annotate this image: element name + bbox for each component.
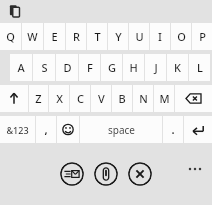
button[interactable]: M	[154, 85, 174, 112]
button[interactable]: X	[49, 85, 69, 112]
button[interactable]: N	[133, 85, 153, 112]
staticText: H	[129, 60, 138, 75]
button[interactable]: More options	[184, 161, 206, 177]
button[interactable]: F	[79, 54, 100, 81]
staticText: Y	[115, 29, 122, 44]
button[interactable]: Y	[108, 23, 128, 50]
staticText: W	[27, 29, 38, 44]
staticText: O	[177, 29, 186, 44]
staticText: P	[199, 29, 206, 44]
button[interactable]: Backspace	[175, 85, 212, 112]
button[interactable]: P	[192, 23, 212, 50]
button[interactable]: Enter	[184, 116, 212, 143]
button[interactable]: H	[123, 54, 144, 81]
button[interactable]: J	[145, 54, 166, 81]
staticText: Q	[6, 29, 15, 44]
staticText: ,	[44, 122, 48, 137]
button[interactable]: B	[112, 85, 132, 112]
button[interactable]: S	[33, 54, 55, 81]
staticText: space	[108, 123, 135, 137]
button[interactable]: space	[80, 116, 162, 143]
button[interactable]: Shift	[0, 85, 28, 112]
staticText: B	[118, 91, 126, 106]
button[interactable]: G	[101, 54, 122, 81]
button[interactable]: C	[70, 85, 90, 112]
button[interactable]: T	[87, 23, 107, 50]
button[interactable]: I	[150, 23, 170, 50]
staticText: I	[158, 29, 162, 44]
staticText: .	[171, 122, 175, 137]
button[interactable]: E	[44, 23, 65, 50]
staticText: V	[98, 91, 105, 106]
staticText: C	[77, 91, 84, 106]
staticText: E	[51, 29, 58, 44]
button[interactable]: Attach	[94, 162, 118, 186]
staticText: &123	[6, 124, 29, 136]
button[interactable]: ,	[36, 116, 56, 143]
button[interactable]: V	[91, 85, 111, 112]
button[interactable]: Close	[128, 162, 152, 186]
staticText: S	[41, 60, 48, 75]
staticText: D	[63, 60, 72, 75]
staticText: N	[139, 91, 148, 106]
button[interactable]: K	[167, 54, 188, 81]
button[interactable]: .	[163, 116, 183, 143]
staticText: G	[108, 60, 116, 75]
staticText: U	[135, 29, 144, 44]
button[interactable]: R	[66, 23, 86, 50]
button[interactable]: W	[22, 23, 43, 50]
button[interactable]: Z	[29, 85, 48, 112]
staticText: F	[87, 60, 93, 75]
staticText: M	[159, 91, 170, 106]
button[interactable]: Q	[0, 23, 21, 50]
staticText: R	[73, 29, 80, 44]
button[interactable]: U	[129, 23, 149, 50]
button[interactable]: L	[189, 54, 210, 81]
button[interactable]: D	[56, 54, 78, 81]
staticText: X	[56, 91, 63, 106]
button[interactable]: A	[10, 54, 32, 81]
staticText: L	[197, 60, 203, 75]
button[interactable]: O	[171, 23, 191, 50]
button[interactable]: Emoji	[57, 116, 79, 143]
staticText: A	[17, 60, 25, 75]
staticText: Z	[35, 91, 42, 106]
button[interactable]: &123	[0, 116, 35, 143]
button[interactable]: Send	[60, 162, 84, 186]
button[interactable]: Clipboard	[7, 3, 23, 19]
staticText: K	[174, 60, 181, 75]
staticText: J	[154, 60, 158, 75]
staticText: T	[94, 29, 101, 44]
